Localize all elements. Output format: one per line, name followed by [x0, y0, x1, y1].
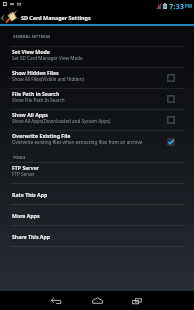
button[interactable]: Toggle setting — [167, 95, 175, 103]
button[interactable]: Toggle setting — [167, 116, 175, 124]
staticText: Show All Apps(Downloaded and System Apps… — [12, 118, 111, 124]
button[interactable]: Set View Mode — [0, 47, 194, 67]
staticText: Set SD Card Manager View Mode — [12, 55, 83, 61]
button[interactable]: Toggle setting — [167, 138, 175, 146]
button[interactable]: Back — [46, 291, 66, 310]
staticText: Share This App — [12, 233, 51, 240]
staticText: File Path in Search — [12, 90, 60, 97]
button[interactable]: FTP Server — [0, 163, 194, 183]
staticText: Show File Path In Search — [12, 97, 65, 103]
staticText: Show All Apps — [12, 111, 48, 118]
button[interactable]: Show Hidden Files — [0, 68, 194, 88]
button[interactable]: File Path in Search — [0, 89, 194, 109]
staticText: SD Card Manager Settings — [21, 14, 91, 21]
staticText: Show Hidden Files — [12, 69, 59, 76]
staticText: FTP Server — [12, 171, 35, 177]
staticText: More Apps — [12, 212, 40, 219]
staticText: 7:33 — [169, 1, 184, 11]
staticText: Overwrite existing files when extracting… — [12, 139, 143, 145]
button[interactable]: Share This App — [0, 226, 194, 246]
button[interactable]: Home — [87, 291, 107, 310]
staticText: Overwrite Existing File — [12, 132, 71, 139]
button[interactable]: Navigate up — [0, 11, 5, 24]
button[interactable]: Overwrite Existing File — [0, 131, 194, 152]
button[interactable]: Rate This App — [0, 184, 194, 204]
staticText: Show All Files(Visible and Hidden) — [12, 76, 84, 82]
staticText: Rate This App — [12, 191, 48, 198]
staticText: TOOLS — [13, 155, 26, 160]
button[interactable]: Toggle setting — [167, 74, 175, 82]
button[interactable]: Recent apps — [127, 291, 147, 310]
staticText: FTP Server — [12, 164, 40, 171]
staticText: PM — [185, 3, 193, 9]
button[interactable]: More Apps — [0, 205, 194, 225]
staticText: Set View Mode — [12, 48, 50, 55]
button[interactable]: Show All Apps — [0, 110, 194, 130]
staticText: GENERAL SETTINGS — [13, 34, 51, 39]
